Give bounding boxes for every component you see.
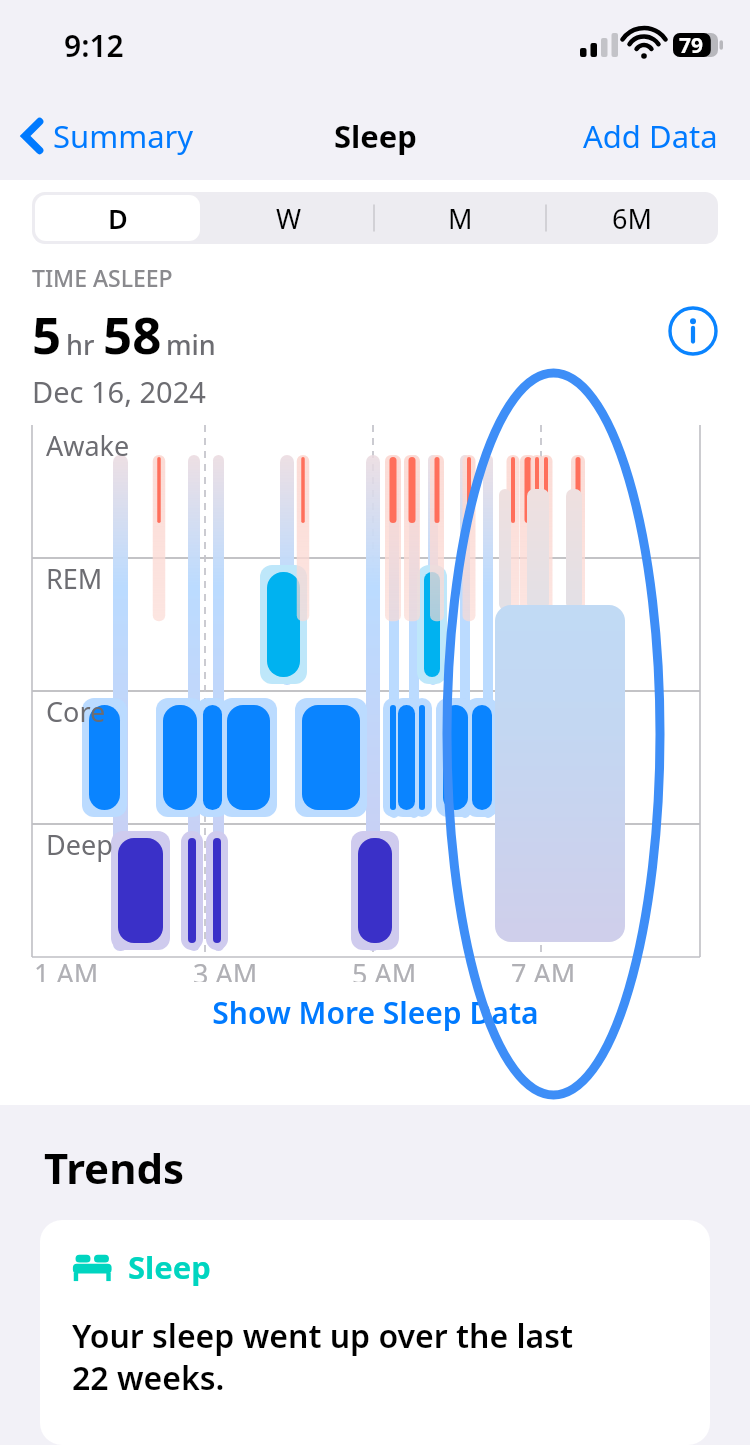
- staticText: 3 AM: [193, 955, 258, 982]
- staticText: Summary: [53, 115, 194, 157]
- staticText: 5: [32, 299, 62, 368]
- staticText: Awake: [46, 427, 130, 464]
- staticText: W: [276, 200, 302, 237]
- staticText: 1 AM: [34, 955, 99, 982]
- button[interactable]: Sleep: [40, 1220, 710, 1445]
- button[interactable]: M: [374, 192, 546, 244]
- staticText: 5 AM: [352, 955, 417, 982]
- staticText: TIME ASLEEP: [32, 262, 173, 293]
- staticText: D: [108, 200, 128, 237]
- staticText: min: [166, 326, 216, 363]
- staticText: M: [448, 200, 473, 237]
- staticText: Sleep: [128, 1246, 211, 1288]
- staticText: Dec 16, 2024: [32, 372, 206, 411]
- staticText: 6M: [612, 200, 652, 237]
- staticText: Add Data: [583, 115, 718, 157]
- staticText: Show More Sleep Data: [212, 992, 539, 1033]
- button[interactable]: Info about time asleep: [668, 306, 718, 356]
- staticText: Deep: [46, 826, 113, 863]
- staticText: REM: [46, 560, 103, 597]
- staticText: 7 AM: [511, 955, 576, 982]
- staticText: Core: [46, 693, 106, 730]
- staticText: 79: [679, 31, 704, 60]
- button[interactable]: W: [203, 192, 374, 244]
- staticText: Sleep: [334, 115, 417, 157]
- staticText: 9:12: [64, 25, 124, 66]
- button[interactable]: Summary: [14, 109, 202, 163]
- staticText: hr: [66, 326, 95, 363]
- button[interactable]: Add Data: [575, 109, 726, 163]
- button[interactable]: D: [32, 192, 203, 244]
- staticText: Your sleep went up over the last 22 week…: [72, 1314, 573, 1399]
- button[interactable]: Show More Sleep Data: [0, 982, 750, 1043]
- button[interactable]: 6M: [546, 192, 718, 244]
- staticText: 58: [103, 299, 162, 368]
- staticText: Trends: [44, 1139, 185, 1196]
